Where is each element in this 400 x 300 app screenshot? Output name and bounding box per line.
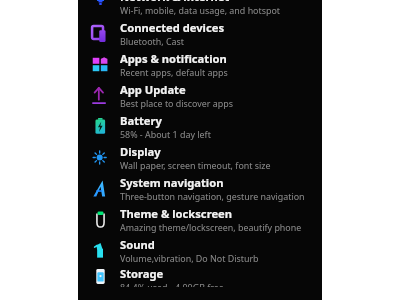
staticText: Sound xyxy=(120,237,155,252)
staticText: Best place to discover apps xyxy=(120,97,233,109)
staticText: Network & internet xyxy=(120,0,230,4)
staticText: 58% - About 1 day left xyxy=(120,128,211,140)
staticText: Three-button navigation, gesture navigat… xyxy=(120,190,305,202)
staticText: Volume,vibration, Do Not Disturb xyxy=(120,252,259,264)
staticText: Apps & notification xyxy=(120,51,227,66)
staticText: System navigation xyxy=(120,175,224,190)
staticText: Amazing theme/lockscreen, beautify phone xyxy=(120,221,302,233)
button[interactable]: Display xyxy=(78,142,322,173)
staticText: Wall paper, screen timeout, font size xyxy=(120,159,271,171)
button[interactable]: Theme & lockscreen xyxy=(78,204,322,235)
button[interactable]: Storage xyxy=(78,266,322,287)
button[interactable]: Connected devices xyxy=(78,18,322,49)
button[interactable]: Battery xyxy=(78,111,322,142)
staticText: App Update xyxy=(120,82,186,97)
staticText: Wi-Fi, mobile, data usage, and hotspot xyxy=(120,4,281,16)
staticText: Recent apps, default apps xyxy=(120,66,228,78)
staticText: Storage xyxy=(120,266,164,281)
button[interactable]: Network & internet xyxy=(78,0,322,18)
button[interactable]: System navigation xyxy=(78,173,322,204)
staticText: Battery xyxy=(120,113,162,128)
staticText: Connected devices xyxy=(120,20,225,35)
button[interactable]: Apps & notification xyxy=(78,49,322,80)
button[interactable]: App Update xyxy=(78,80,322,111)
staticText: Display xyxy=(120,144,161,159)
staticText: 84.4% used - 4.00GB free xyxy=(120,281,224,287)
staticText: Theme & lockscreen xyxy=(120,206,233,221)
staticText: Bluetooth, Cast xyxy=(120,35,185,47)
button[interactable]: Sound xyxy=(78,235,322,266)
